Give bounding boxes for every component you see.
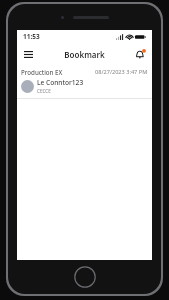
staticText: Bookmark [64,49,105,60]
staticText: CECCE [37,88,51,94]
button[interactable]: Notifications [131,45,149,63]
button[interactable]: Menu [19,45,37,63]
staticText: 08/27/2023 3:47 PM [95,68,148,76]
staticText: Le Conntor123 [37,78,84,87]
staticText: 11:53 [23,32,40,41]
staticText: Production EX [21,68,63,76]
button[interactable]: Production EX [17,65,152,98]
